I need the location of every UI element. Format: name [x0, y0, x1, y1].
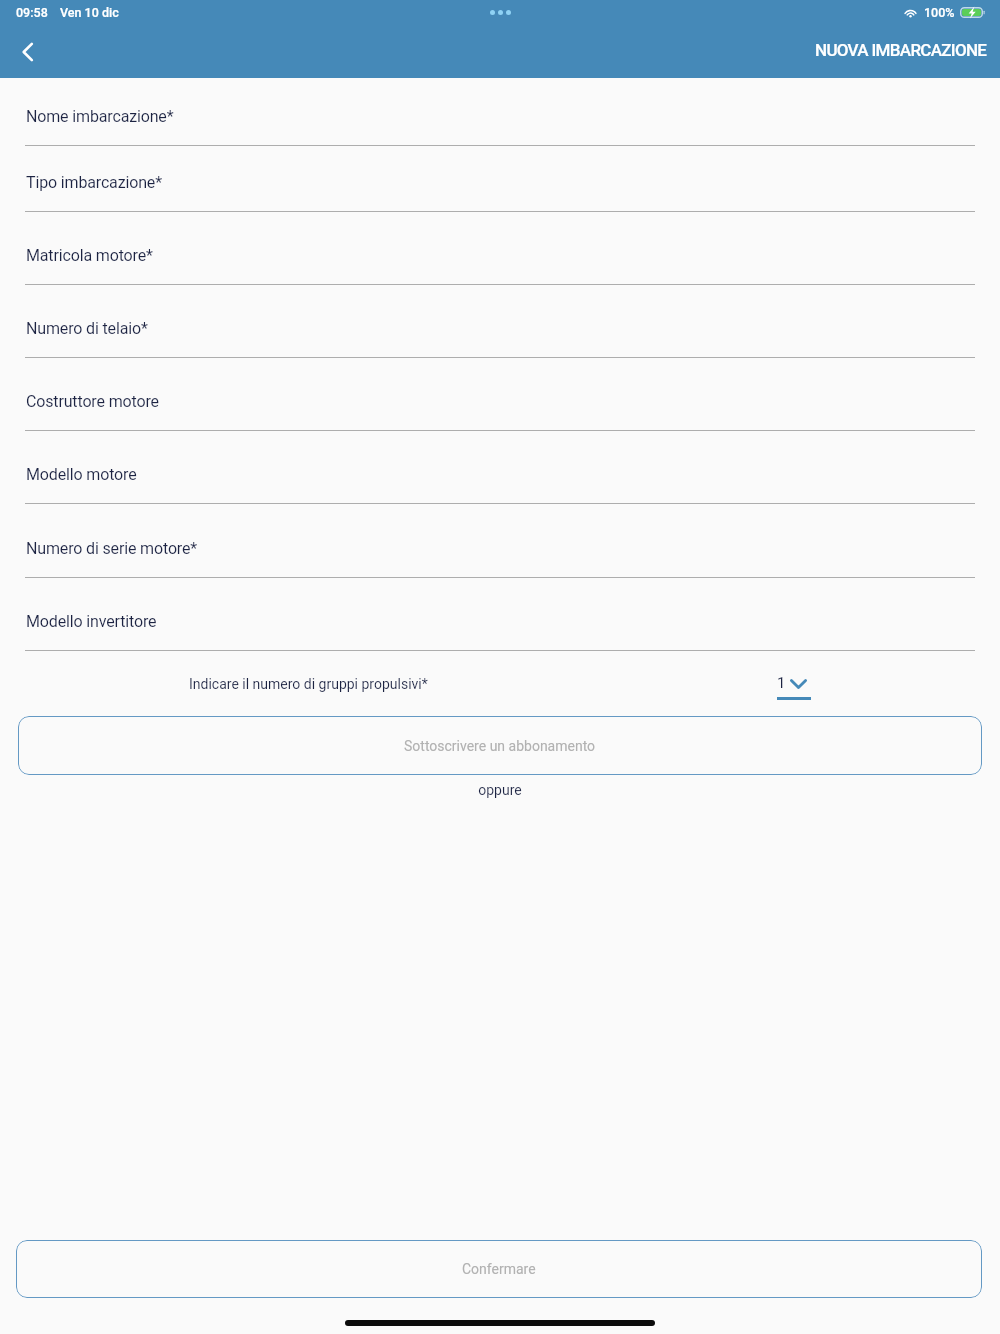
button[interactable]: Tipo imbarcazione*: [0, 146, 1000, 212]
button[interactable]: Modello invertitore: [0, 578, 1000, 651]
staticText: Indicare il numero di gruppi propulsivi*: [189, 676, 428, 692]
staticText: Tipo imbarcazione*: [26, 173, 162, 192]
button[interactable]: Numero di gruppi propulsivi: [770, 668, 814, 706]
button[interactable]: Modello motore: [0, 431, 1000, 504]
staticText: Ven 10 dic: [60, 5, 119, 20]
staticText: 100%: [924, 5, 955, 20]
button[interactable]: Numero di telaio*: [0, 285, 1000, 358]
staticText: Nome imbarcazione*: [26, 107, 174, 126]
staticText: Numero di serie motore*: [26, 539, 198, 558]
staticText: Modello motore: [26, 465, 137, 484]
button[interactable]: Costruttore motore: [0, 358, 1000, 431]
staticText: oppure: [0, 782, 1000, 798]
staticText: Confermare: [462, 1261, 536, 1277]
button[interactable]: Sottoscrivere un abbonamento: [18, 716, 982, 775]
staticText: Sottoscrivere un abbonamento: [404, 738, 596, 754]
staticText: Costruttore motore: [26, 392, 159, 411]
button[interactable]: Nome imbarcazione*: [0, 78, 1000, 146]
staticText: NUOVA IMBARCAZIONE: [815, 40, 987, 60]
button[interactable]: Matricola motore*: [0, 212, 1000, 285]
button[interactable]: Back: [4, 28, 52, 76]
staticText: 09:58: [16, 5, 48, 20]
button[interactable]: Numero di serie motore*: [0, 504, 1000, 578]
staticText: Modello invertitore: [26, 612, 157, 631]
button[interactable]: Confermare: [16, 1240, 982, 1298]
staticText: 1: [777, 674, 786, 692]
staticText: Matricola motore*: [26, 246, 153, 265]
staticText: Numero di telaio*: [26, 319, 148, 338]
